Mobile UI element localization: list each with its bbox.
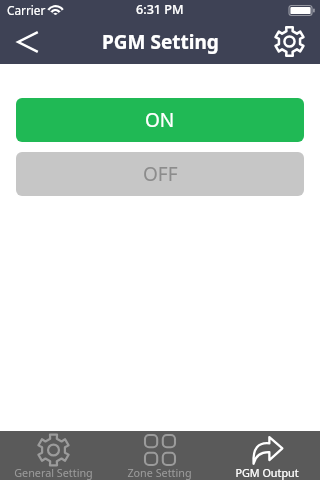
button[interactable]: Settings (272, 20, 320, 64)
staticText: 6:31 PM (136, 1, 184, 18)
button[interactable]: PGM Output (213, 431, 320, 480)
button[interactable]: OFF (16, 152, 304, 196)
staticText: PGM Output (235, 465, 299, 480)
staticText: OFF (143, 161, 178, 187)
button[interactable]: Zone Setting (106, 431, 213, 480)
staticText: ON (145, 107, 175, 133)
staticText: Zone Setting (127, 465, 192, 480)
button[interactable]: General Setting (0, 431, 106, 480)
staticText: Carrier (7, 2, 46, 18)
button[interactable]: Back (0, 20, 54, 64)
staticText: PGM Setting (102, 29, 219, 55)
staticText: General Setting (14, 465, 93, 480)
button[interactable]: ON (16, 98, 304, 142)
